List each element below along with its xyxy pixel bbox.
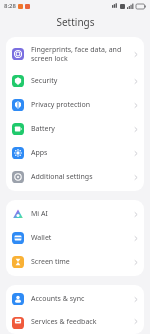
button[interactable]: Screen time: [6, 250, 144, 274]
button[interactable]: Services & feedback: [6, 311, 144, 332]
staticText: Services & feedback: [31, 317, 130, 326]
staticText: 8:28: [4, 2, 16, 10]
button[interactable]: Apps: [6, 141, 144, 165]
staticText: Screen time: [31, 257, 130, 267]
staticText: Fingerprints, face data, and screen lock: [31, 45, 130, 63]
staticText: Apps: [31, 148, 130, 158]
button[interactable]: Wallet: [6, 226, 144, 250]
button[interactable]: Battery: [6, 117, 144, 141]
button[interactable]: Security: [6, 69, 144, 93]
staticText: Mi AI: [31, 209, 130, 219]
button[interactable]: Privacy protection: [6, 93, 144, 117]
staticText: Wallet: [31, 233, 130, 243]
staticText: Battery: [31, 124, 130, 134]
staticText: Additional settings: [31, 172, 130, 182]
staticText: Settings: [56, 15, 95, 29]
staticText: Accounts & sync: [31, 294, 130, 304]
button[interactable]: Mi AI: [6, 202, 144, 226]
staticText: Privacy protection: [31, 100, 130, 110]
button[interactable]: Fingerprints, face data, and screen lock: [6, 39, 144, 69]
button[interactable]: Additional settings: [6, 165, 144, 189]
staticText: Security: [31, 76, 130, 86]
button[interactable]: Accounts & sync: [6, 287, 144, 311]
